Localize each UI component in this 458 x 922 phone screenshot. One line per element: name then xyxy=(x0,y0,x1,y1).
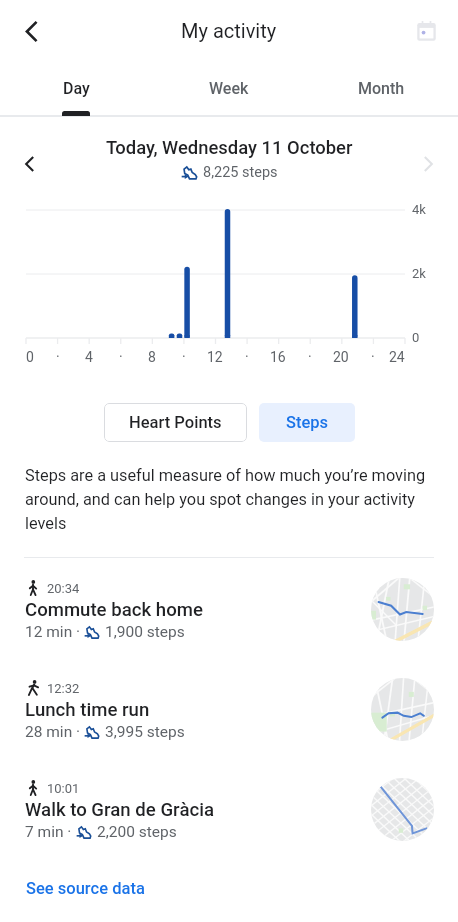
button[interactable]: Steps xyxy=(259,403,355,442)
button[interactable]: 20:34 xyxy=(0,580,458,666)
staticText: 24 xyxy=(389,349,405,365)
staticText: 1,900 steps xyxy=(105,623,185,641)
staticText: · xyxy=(119,349,123,365)
staticText: Month xyxy=(358,79,405,98)
staticText: 8 xyxy=(148,349,156,365)
staticText: 2,200 steps xyxy=(97,823,177,841)
staticText: 12 min · xyxy=(25,623,84,641)
staticText: · xyxy=(56,349,60,365)
staticText: Steps are a useful measure of how much y… xyxy=(25,466,437,533)
button[interactable]: Next day xyxy=(410,146,446,182)
staticText: · xyxy=(182,349,186,365)
staticText: My activity xyxy=(181,19,277,42)
staticText: Steps xyxy=(286,413,329,432)
staticText: See source data xyxy=(26,879,145,898)
staticText: 4 xyxy=(85,349,93,365)
button[interactable]: Day xyxy=(0,65,152,119)
staticText: 0 xyxy=(412,330,420,345)
button[interactable]: Month xyxy=(305,65,458,119)
staticText: 7 min · xyxy=(25,823,76,841)
staticText: 0 xyxy=(26,349,34,365)
button[interactable]: 12:32 xyxy=(0,680,458,766)
staticText: 3,995 steps xyxy=(105,723,185,741)
button[interactable]: Previous day xyxy=(12,146,48,182)
staticText: · xyxy=(371,349,375,365)
staticText: 12:32 xyxy=(47,681,80,696)
staticText: 28 min · xyxy=(25,723,84,741)
staticText: 10:01 xyxy=(47,781,80,796)
staticText: 20:34 xyxy=(47,581,80,596)
button[interactable]: Week xyxy=(152,65,305,119)
staticText: Heart Points xyxy=(129,413,222,432)
staticText: Week xyxy=(209,79,249,98)
staticText: Walk to Gran de Gràcia xyxy=(25,799,215,821)
button[interactable]: See source data xyxy=(0,869,171,908)
staticText: 8,225 steps xyxy=(203,164,278,181)
staticText: · xyxy=(308,349,312,365)
staticText: 4k xyxy=(412,202,426,217)
staticText: · xyxy=(245,349,249,365)
staticText: Today, Wednesday 11 October xyxy=(106,137,353,159)
staticText: Commute back home xyxy=(25,599,203,621)
staticText: 12 xyxy=(207,349,223,365)
button[interactable]: 10:01 xyxy=(0,780,458,866)
staticText: Day xyxy=(63,79,90,98)
button[interactable]: Back xyxy=(8,8,54,54)
button[interactable]: Heart Points xyxy=(104,403,247,442)
staticText: Lunch time run xyxy=(25,699,150,721)
button[interactable]: Calendar xyxy=(404,9,448,53)
staticText: 20 xyxy=(333,349,349,365)
staticText: 16 xyxy=(270,349,286,365)
staticText: 2k xyxy=(412,266,426,281)
